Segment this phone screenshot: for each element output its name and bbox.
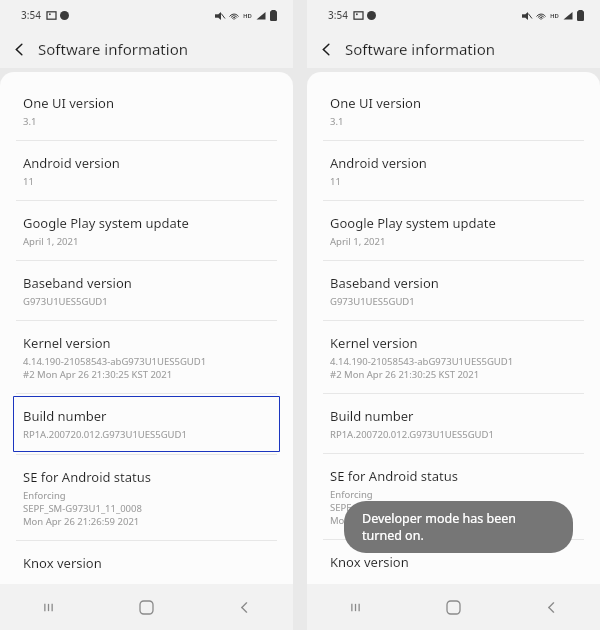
staticText: Mon Apr 26 21:26:59 2021 <box>330 514 447 527</box>
button[interactable]: Build number <box>13 396 280 452</box>
staticText: Baseband version <box>23 274 132 292</box>
staticText: 11 <box>23 175 34 188</box>
staticText: Baseband version <box>330 274 439 292</box>
button[interactable]: One UI version <box>307 81 600 140</box>
staticText: One UI version <box>23 94 114 112</box>
staticText: #2 Mon Apr 26 21:30:25 KST 2021 <box>23 368 173 381</box>
button[interactable]: Knox version <box>307 540 600 584</box>
staticText: RP1A.200720.012.G973U1UES5GUD1 <box>23 428 187 441</box>
staticText: G973U1UES5GUD1 <box>330 295 415 308</box>
button[interactable]: Google Play system update <box>0 201 293 260</box>
staticText: #2 Mon Apr 26 21:30:25 KST 2021 <box>330 368 480 381</box>
button[interactable]: Kernel version <box>307 321 600 393</box>
button[interactable]: Android version <box>0 141 293 200</box>
staticText: One UI version <box>330 94 421 112</box>
staticText: Software information <box>345 39 495 59</box>
button[interactable]: Kernel version <box>0 321 293 393</box>
button[interactable]: SE for Android status <box>307 454 600 539</box>
staticText: SEPF_SM-G973U1_11_0008 <box>23 502 142 515</box>
button[interactable]: Build number <box>307 394 600 453</box>
button[interactable]: Home <box>97 584 195 630</box>
button[interactable]: Knox version <box>0 541 293 584</box>
button[interactable]: Home <box>404 584 502 630</box>
staticText: 11 <box>330 175 341 188</box>
staticText: SE for Android status <box>23 468 152 486</box>
staticText: Android version <box>330 154 427 172</box>
staticText: Google Play system update <box>330 214 496 232</box>
staticText: HD <box>243 12 252 20</box>
staticText: RP1A.200720.012.G973U1UES5GUD1 <box>330 428 494 441</box>
staticText: Enforcing <box>23 489 66 502</box>
staticText: Enforcing <box>330 488 373 501</box>
button[interactable]: Google Play system update <box>307 201 600 260</box>
staticText: 3:54 <box>328 8 348 22</box>
button[interactable]: Recents <box>0 584 97 630</box>
button[interactable]: Back <box>307 30 345 68</box>
staticText: SEPF_SM-G973U1_11_0008 <box>330 501 449 514</box>
button[interactable]: Back <box>195 584 293 630</box>
button[interactable]: Recents <box>307 584 404 630</box>
staticText: HD <box>550 12 559 20</box>
staticText: Android version <box>23 154 120 172</box>
staticText: Google Play system update <box>23 214 189 232</box>
button[interactable]: SE for Android status <box>0 455 293 540</box>
button[interactable]: Baseband version <box>307 261 600 320</box>
staticText: Developer mode has been turned on. <box>362 510 555 544</box>
staticText: Build number <box>330 407 414 425</box>
staticText: Kernel version <box>330 334 418 352</box>
staticText: Knox version <box>23 554 102 572</box>
staticText: Kernel version <box>23 334 111 352</box>
staticText: 3:54 <box>21 8 41 22</box>
staticText: Knox version <box>330 553 409 571</box>
staticText: April 1, 2021 <box>23 235 79 248</box>
staticText: 3.1 <box>23 115 37 128</box>
staticText: SE for Android status <box>330 467 459 485</box>
staticText: April 1, 2021 <box>330 235 386 248</box>
button[interactable]: Back <box>0 30 38 68</box>
staticText: G973U1UES5GUD1 <box>23 295 108 308</box>
staticText: 4.14.190-21058543-abG973U1UES5GUD1 <box>23 355 207 368</box>
button[interactable]: Baseband version <box>0 261 293 320</box>
staticText: 4.14.190-21058543-abG973U1UES5GUD1 <box>330 355 514 368</box>
staticText: 3.1 <box>330 115 344 128</box>
staticText: Build number <box>23 407 107 425</box>
button[interactable]: One UI version <box>0 81 293 140</box>
staticText: Mon Apr 26 21:26:59 2021 <box>23 515 140 528</box>
staticText: Software information <box>38 39 188 59</box>
button[interactable]: Android version <box>307 141 600 200</box>
button[interactable]: Back <box>502 584 600 630</box>
